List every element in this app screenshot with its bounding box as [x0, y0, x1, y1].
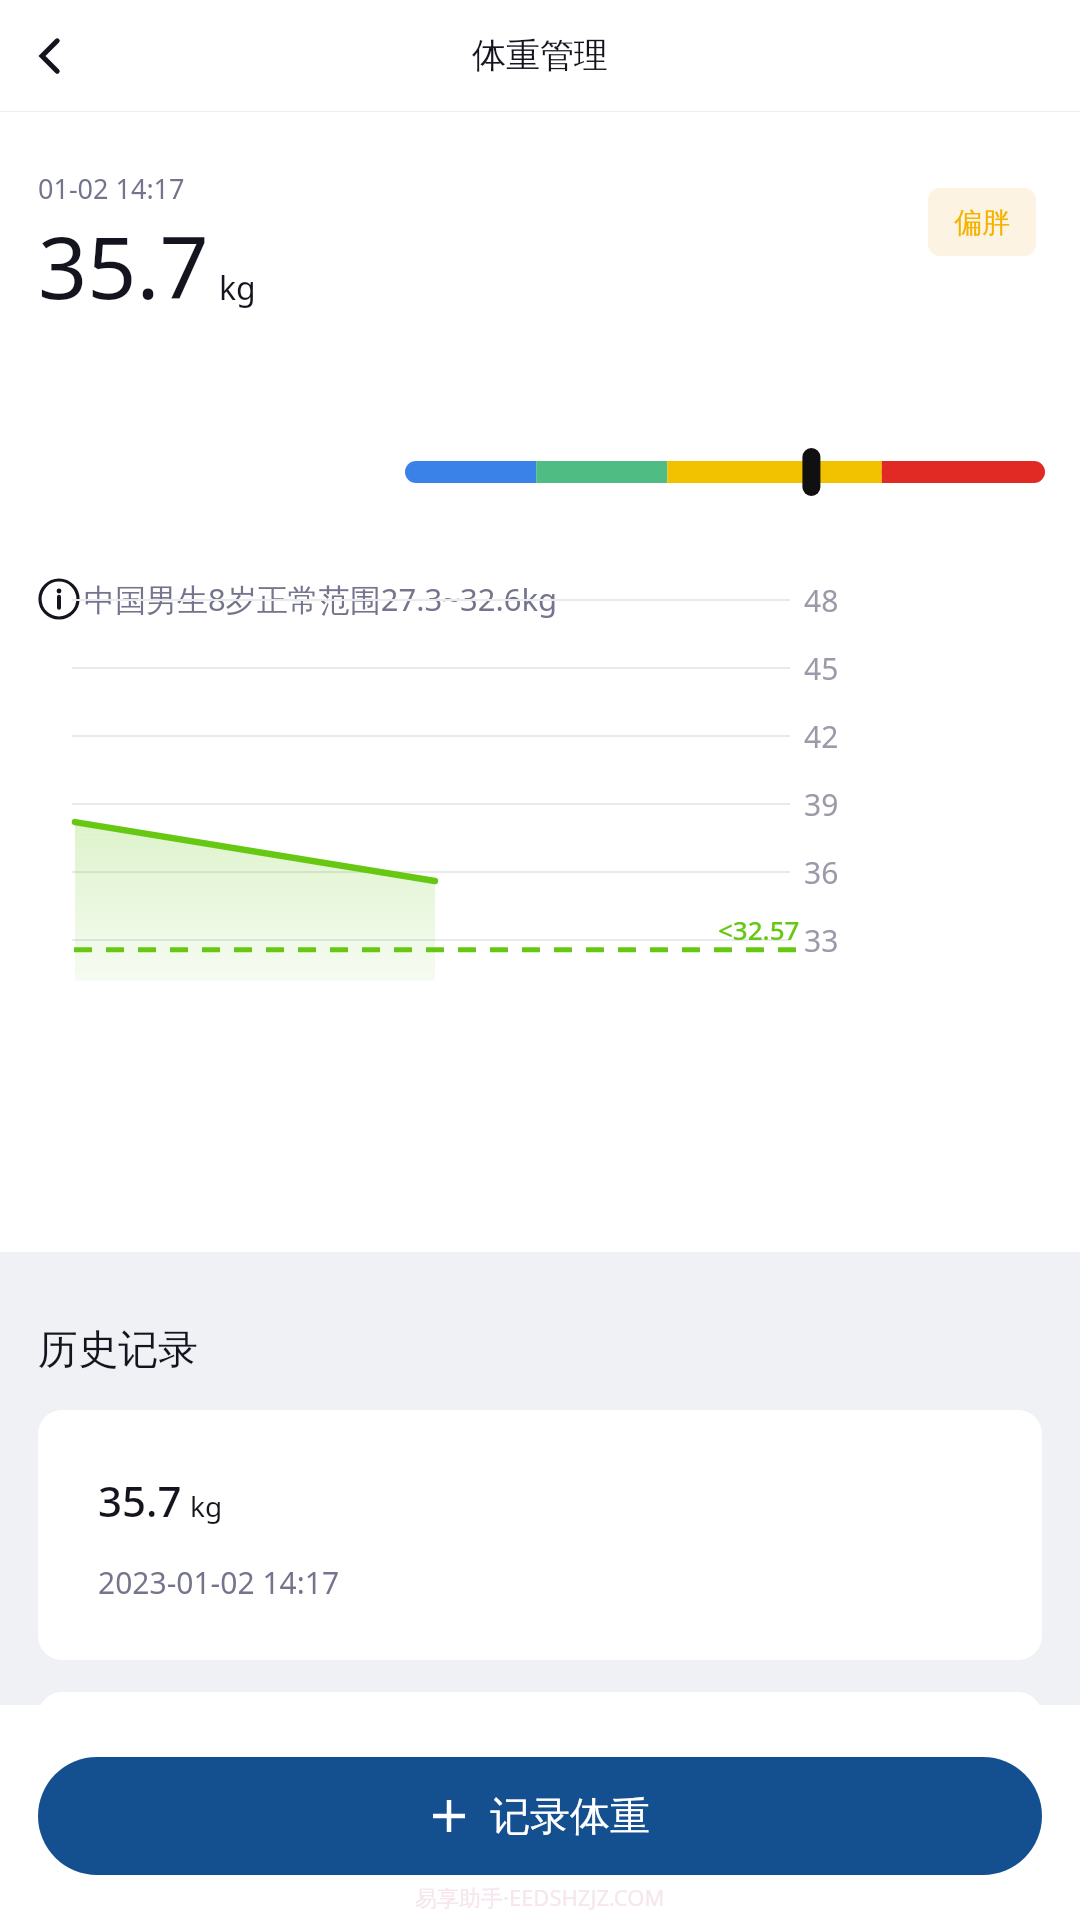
staticText: 45: [804, 648, 839, 689]
button[interactable]: Back: [14, 20, 86, 92]
staticText: <32.57: [718, 912, 800, 947]
staticText: 偏胖: [954, 205, 1010, 240]
staticText: 36: [804, 852, 839, 893]
staticText: 历史记录: [38, 1324, 198, 1374]
staticText: 48: [804, 580, 839, 621]
button[interactable]: 35.7: [38, 1410, 1042, 1660]
staticText: kg: [190, 1487, 223, 1525]
staticText: 35.7: [38, 207, 209, 324]
staticText: 易享助手·EEDSHZJZ.COM: [415, 1882, 665, 1912]
staticText: 01-02 14:17: [38, 170, 185, 207]
staticText: 39: [804, 784, 839, 825]
button[interactable]: [38, 1692, 1042, 1812]
button[interactable]: 中国男生8岁正常范围27.3~32.6kg: [38, 578, 558, 620]
staticText: 2023-01-02 14:17: [98, 1562, 340, 1603]
button[interactable]: 记录体重: [38, 1757, 1042, 1875]
staticText: kg: [219, 266, 256, 310]
staticText: 33: [804, 920, 839, 961]
button[interactable]: 偏胖: [928, 188, 1036, 256]
staticText: 35.7: [98, 1472, 182, 1529]
staticText: 42: [804, 716, 839, 757]
staticText: 体重管理: [472, 34, 608, 77]
staticText: 记录体重: [490, 1791, 650, 1841]
staticText: 中国男生8岁正常范围27.3~32.6kg: [84, 578, 558, 620]
